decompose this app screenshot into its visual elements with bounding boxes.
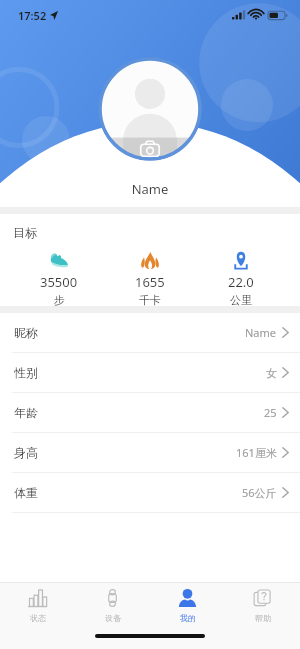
button[interactable]: 体重 xyxy=(0,473,300,512)
staticText: 22.0 xyxy=(228,273,254,291)
button[interactable]: 设备 xyxy=(75,583,150,649)
button[interactable]: 35500 xyxy=(14,250,104,307)
staticText: 昵称 xyxy=(14,325,38,340)
staticText: 1655 xyxy=(135,273,165,291)
staticText: 公里 xyxy=(230,293,252,307)
staticText: 性别 xyxy=(14,365,38,380)
staticText: Name xyxy=(0,180,300,198)
button[interactable]: 状态 xyxy=(0,583,75,649)
button[interactable]: 年龄 xyxy=(0,393,300,432)
staticText: 目标 xyxy=(13,225,37,240)
button[interactable]: 身高 xyxy=(0,433,300,472)
staticText: 56公斤 xyxy=(242,485,277,500)
staticText: 设备 xyxy=(105,613,121,623)
staticText: 161厘米 xyxy=(236,445,277,460)
staticText: Name xyxy=(245,325,277,340)
staticText: 千卡 xyxy=(139,293,161,307)
button[interactable]: 性别 xyxy=(0,353,300,392)
button[interactable]: 昵称 xyxy=(0,313,300,352)
staticText: 女 xyxy=(266,366,277,380)
staticText: 25 xyxy=(264,405,277,420)
button[interactable]: Change profile photo xyxy=(98,57,202,161)
staticText: 步 xyxy=(54,293,65,307)
button[interactable]: 1655 xyxy=(104,250,195,307)
staticText: 年龄 xyxy=(14,405,38,420)
staticText: 体重 xyxy=(14,485,38,500)
button[interactable]: 我的 xyxy=(150,583,225,649)
staticText: 我的 xyxy=(180,613,196,623)
button[interactable]: 22.0 xyxy=(195,250,286,307)
staticText: 帮助 xyxy=(255,613,271,623)
staticText: 35500 xyxy=(40,273,78,291)
button[interactable]: 帮助 xyxy=(225,583,300,649)
staticText: 身高 xyxy=(14,445,38,460)
staticText: 状态 xyxy=(30,613,46,623)
staticText: 17:52 xyxy=(18,8,47,23)
